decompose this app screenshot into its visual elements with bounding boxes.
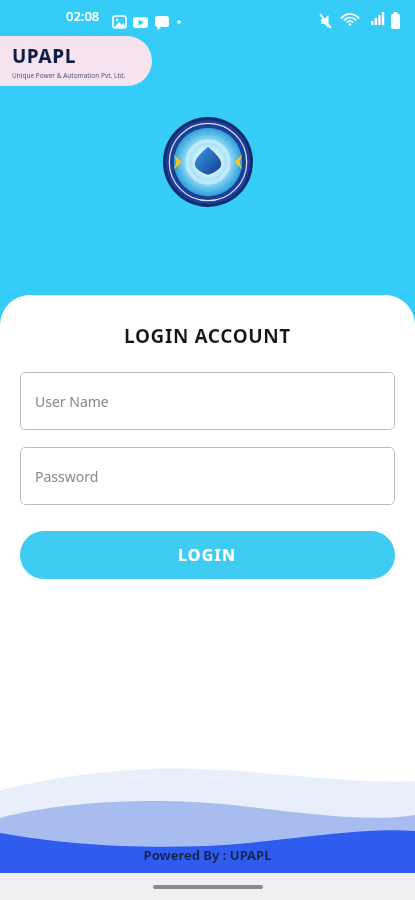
staticText: User Name (35, 392, 109, 411)
staticText: Unique Power & Automation Pvt. Ltd. (12, 71, 126, 80)
button[interactable]: Password (20, 447, 395, 505)
staticText: LOGIN ACCOUNT (0, 323, 415, 349)
staticText: 02:08 (66, 7, 100, 25)
staticText: UPAPL (12, 43, 76, 69)
button[interactable]: LOGIN (20, 531, 395, 579)
staticText: Password (35, 467, 99, 486)
staticText: LOGIN (178, 544, 237, 566)
staticText: Powered By : UPAPL (0, 846, 415, 864)
button[interactable]: UPAPL (0, 36, 152, 86)
button[interactable]: User Name (20, 372, 395, 430)
